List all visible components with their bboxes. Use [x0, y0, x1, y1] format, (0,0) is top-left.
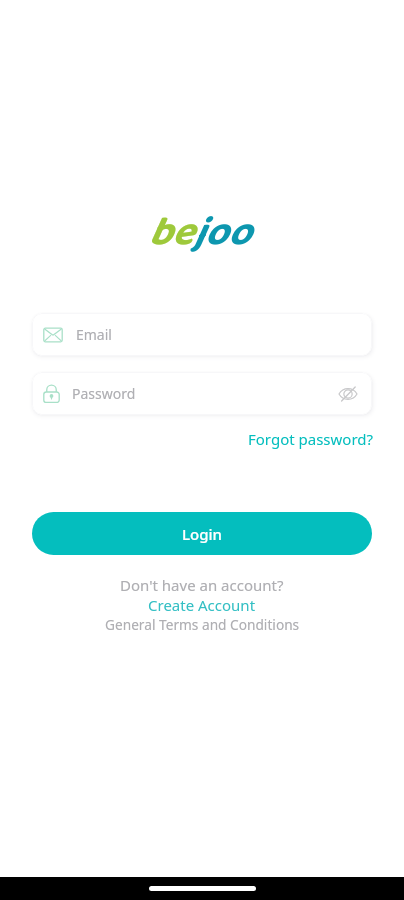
staticText: Forgot password?	[248, 429, 374, 449]
staticText: Create Account	[148, 595, 256, 615]
staticText: be	[148, 201, 193, 265]
button[interactable]: General Terms and Conditions	[105, 615, 300, 634]
button[interactable]: Show password	[335, 381, 361, 407]
staticText: Don't have an account?	[120, 575, 284, 595]
button[interactable]: Email	[32, 313, 372, 356]
staticText: Login	[182, 524, 222, 544]
staticText: Email	[76, 325, 112, 344]
button[interactable]: Login	[32, 512, 372, 555]
staticText: joo	[193, 201, 251, 265]
button[interactable]: Create Account	[148, 595, 256, 615]
button[interactable]: Password	[32, 372, 372, 415]
staticText: Password	[72, 384, 136, 403]
button[interactable]: Forgot password?	[248, 429, 374, 449]
staticText: General Terms and Conditions	[105, 615, 300, 634]
